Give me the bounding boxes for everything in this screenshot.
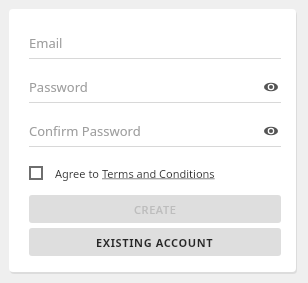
button[interactable]: EXISTING ACCOUNT	[29, 228, 281, 256]
button[interactable]: Show password	[261, 77, 281, 97]
button[interactable]: Email	[29, 31, 281, 59]
staticText: Confirm Password	[29, 122, 141, 140]
button[interactable]: Password	[29, 75, 281, 103]
button[interactable]: CREATE	[29, 195, 281, 223]
button[interactable]: Confirm Password	[29, 119, 281, 147]
staticText: Email	[29, 34, 63, 52]
button[interactable]: Terms and Conditions	[102, 166, 215, 181]
staticText: EXISTING ACCOUNT	[96, 235, 214, 250]
button[interactable]: Agree to	[29, 160, 215, 186]
button[interactable]: Show confirm password	[261, 121, 281, 141]
staticText: Password	[29, 78, 88, 96]
staticText: Agree to	[55, 166, 102, 181]
staticText: CREATE	[134, 202, 177, 217]
